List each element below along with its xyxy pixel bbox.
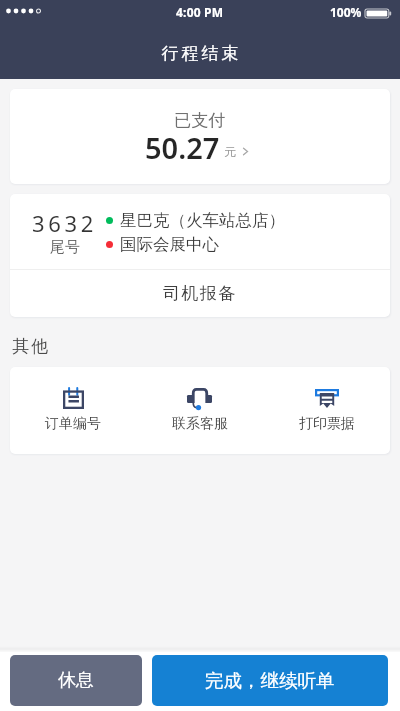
button[interactable]: Contact support <box>136 382 263 439</box>
staticText: 休息 <box>58 669 94 692</box>
staticText: 行程结束 <box>160 43 240 64</box>
button[interactable]: 司机报备 <box>10 270 390 317</box>
other: Contact support <box>187 388 212 409</box>
staticText: 国际会展中心 <box>120 234 219 255</box>
staticText: 打印票据 <box>299 415 355 433</box>
button[interactable]: 完成，继续听单 <box>152 655 388 706</box>
button[interactable]: Order number <box>10 382 136 439</box>
other: Print receipt <box>315 389 339 409</box>
staticText: 已支付 <box>174 110 226 131</box>
staticText: 其他 <box>11 336 49 357</box>
staticText: 100% <box>330 4 362 20</box>
button[interactable]: Print receipt <box>263 383 390 439</box>
staticText: 元 <box>224 144 236 159</box>
staticText: 司机报备 <box>163 283 237 304</box>
staticText: 50.27 <box>145 128 220 167</box>
staticText: 尾号 <box>50 238 80 257</box>
staticText: 3632 <box>32 208 98 238</box>
staticText: 4:00 PM <box>176 4 224 20</box>
staticText: 完成，继续听单 <box>205 669 335 692</box>
other: Order number <box>63 388 84 409</box>
staticText: 星巴克（火车站总店） <box>120 210 285 231</box>
staticText: 订单编号 <box>45 415 101 433</box>
staticText: 联系客服 <box>172 415 228 433</box>
button[interactable]: 休息 <box>10 655 142 706</box>
